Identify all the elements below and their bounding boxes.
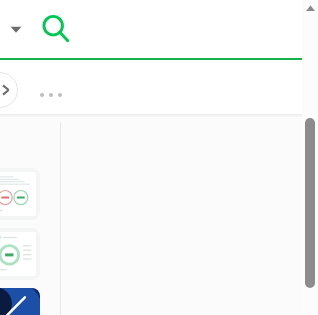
button[interactable]: Report thumbnail <box>0 168 40 220</box>
button[interactable]: Dropdown <box>2 15 30 43</box>
button[interactable]: Chart thumbnail <box>0 228 40 280</box>
button[interactable]: Search <box>36 9 76 49</box>
button[interactable]: Next <box>0 72 18 108</box>
button[interactable]: Video thumbnail <box>0 288 40 315</box>
button[interactable]: Scrollbar thumb <box>305 118 315 288</box>
button[interactable]: More options <box>40 85 76 105</box>
button[interactable]: Scroll up <box>302 0 318 16</box>
